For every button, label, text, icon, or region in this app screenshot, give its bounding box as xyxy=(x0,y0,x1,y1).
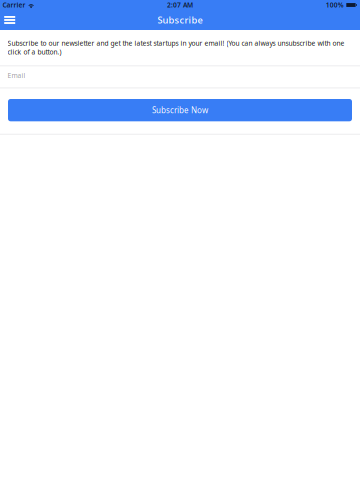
staticText: Email xyxy=(7,71,25,80)
staticText: Subscribe xyxy=(157,14,202,26)
staticText: Carrier xyxy=(2,1,25,9)
staticText: Subscribe Now xyxy=(152,105,208,115)
staticText: 2:07 AM xyxy=(167,1,193,9)
staticText: 100% xyxy=(326,1,344,9)
button[interactable]: Email xyxy=(0,66,360,87)
staticText: Subscribe to our newsletter and get the … xyxy=(7,39,344,56)
button[interactable]: Menu xyxy=(0,10,19,30)
button[interactable]: Subscribe Now xyxy=(8,99,352,121)
